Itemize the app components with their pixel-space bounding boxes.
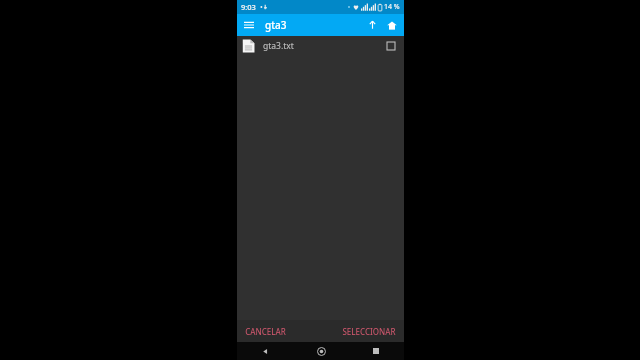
staticText: 9:03: [241, 2, 256, 12]
button[interactable]: SELECCIONAR: [334, 320, 404, 342]
staticText: gta3: [265, 18, 287, 32]
staticText: SELECCIONAR: [342, 326, 396, 337]
button[interactable]: Go up one folder: [363, 16, 381, 34]
button[interactable]: Recent apps: [367, 342, 385, 360]
button[interactable]: Home folder: [383, 16, 401, 34]
staticText: 14 %: [384, 2, 400, 12]
button[interactable]: CANCELAR: [237, 320, 294, 342]
button[interactable]: gta3.txt: [237, 36, 404, 56]
button[interactable]: Open navigation drawer: [240, 16, 258, 34]
staticText: gta3.txt: [263, 40, 294, 52]
button[interactable]: Back: [256, 342, 274, 360]
button[interactable]: Home: [312, 342, 330, 360]
staticText: CANCELAR: [245, 326, 286, 337]
button[interactable]: Select gta3.txt: [383, 38, 399, 54]
